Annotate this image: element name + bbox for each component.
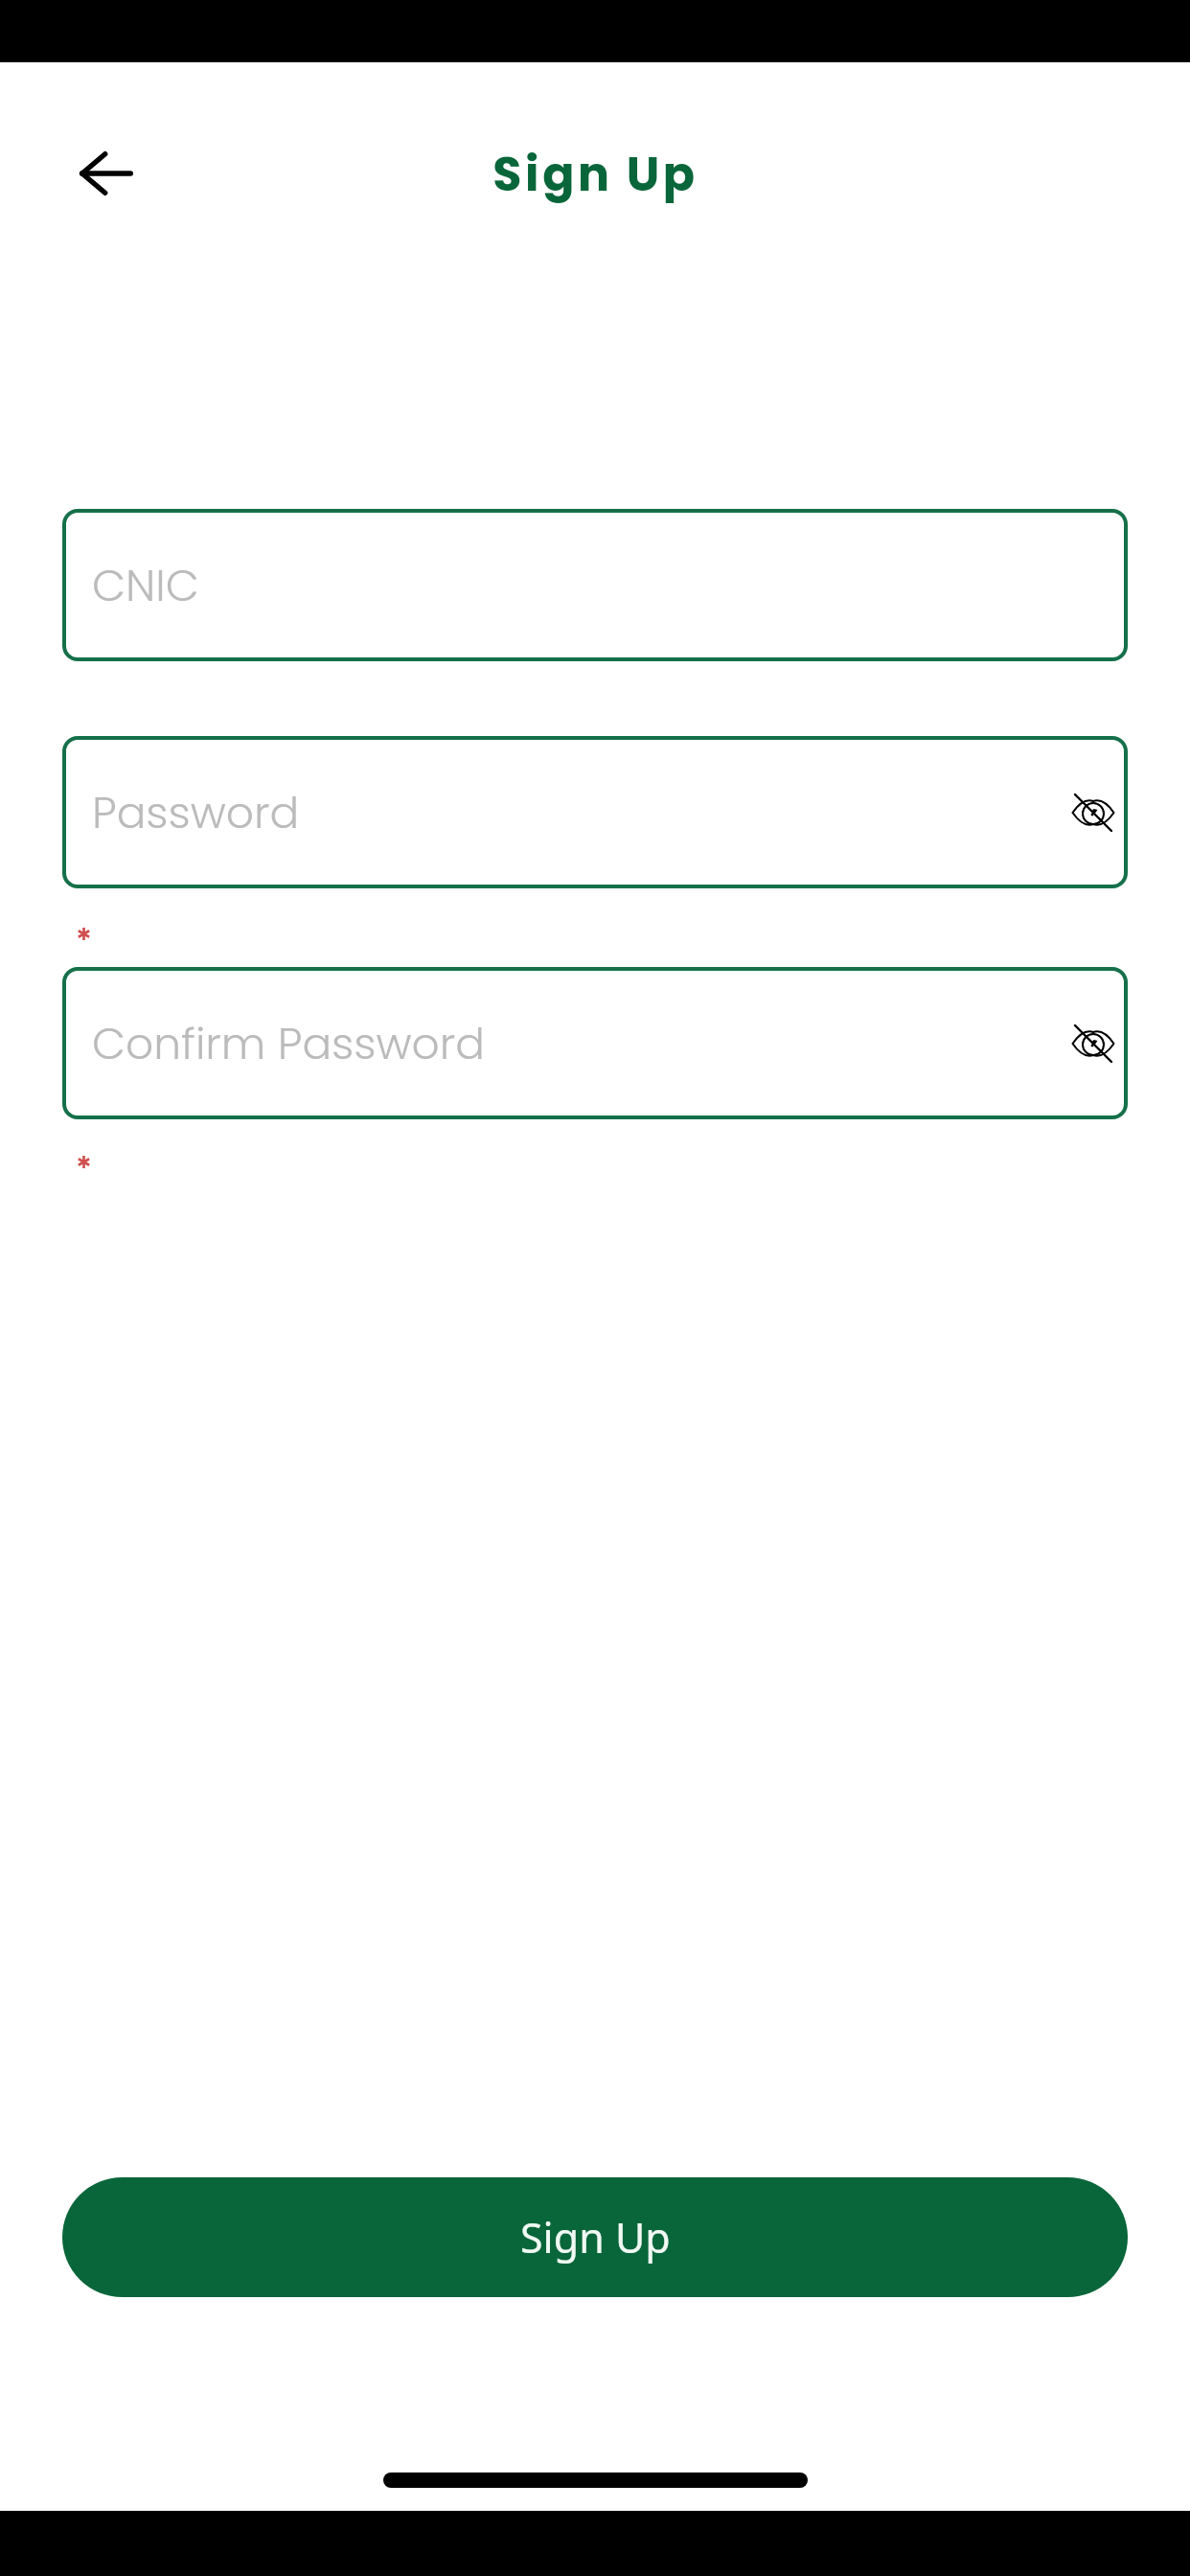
staticText: Password — [92, 782, 300, 843]
button[interactable]: Back — [53, 142, 160, 205]
button[interactable]: Toggle password visibility — [1063, 782, 1124, 843]
staticText: CNIC — [92, 555, 199, 616]
button[interactable]: Sign Up — [62, 2177, 1128, 2297]
button[interactable]: Confirm Password — [62, 967, 1128, 1119]
button[interactable]: Password — [62, 736, 1128, 888]
staticText: Confirm Password — [92, 1013, 486, 1074]
staticText: Sign Up — [492, 142, 698, 208]
button[interactable]: Toggle password visibility — [1063, 1013, 1124, 1074]
button[interactable]: CNIC — [62, 509, 1128, 661]
staticText: Sign Up — [520, 2209, 671, 2265]
